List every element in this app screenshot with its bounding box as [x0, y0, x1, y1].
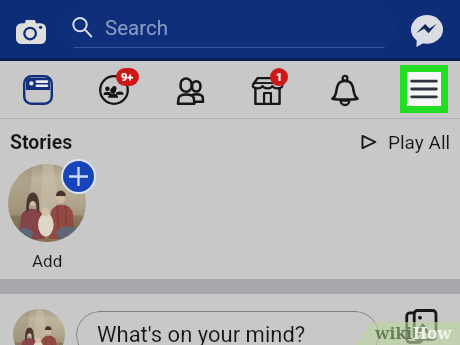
staticText: 1: [276, 71, 283, 84]
button[interactable]: Friends: [152, 61, 229, 119]
button[interactable]: News Feed: [0, 61, 76, 119]
staticText: Play All: [388, 131, 451, 153]
button[interactable]: Add to story: [8, 164, 86, 242]
button[interactable]: Camera: [11, 11, 51, 51]
button[interactable]: Search: [62, 7, 396, 50]
staticText: How: [413, 321, 452, 344]
staticText: Add: [32, 251, 63, 271]
staticText: Stories: [10, 131, 73, 154]
button[interactable]: Notifications: [306, 61, 383, 119]
staticText: wiki: [375, 321, 413, 344]
button[interactable]: Play All: [358, 128, 454, 156]
staticText: Search: [105, 16, 168, 40]
button[interactable]: Marketplace: [229, 61, 306, 119]
button[interactable]: Menu: [407, 72, 441, 106]
staticText: 9+: [121, 71, 134, 84]
button[interactable]: Groups: [76, 61, 152, 119]
button[interactable]: Photo: [403, 309, 439, 345]
button[interactable]: Messenger: [410, 14, 444, 48]
button[interactable]: Profile: [13, 309, 65, 345]
staticText: What's on your mind?: [97, 322, 306, 345]
button[interactable]: What's on your mind?: [76, 311, 379, 345]
